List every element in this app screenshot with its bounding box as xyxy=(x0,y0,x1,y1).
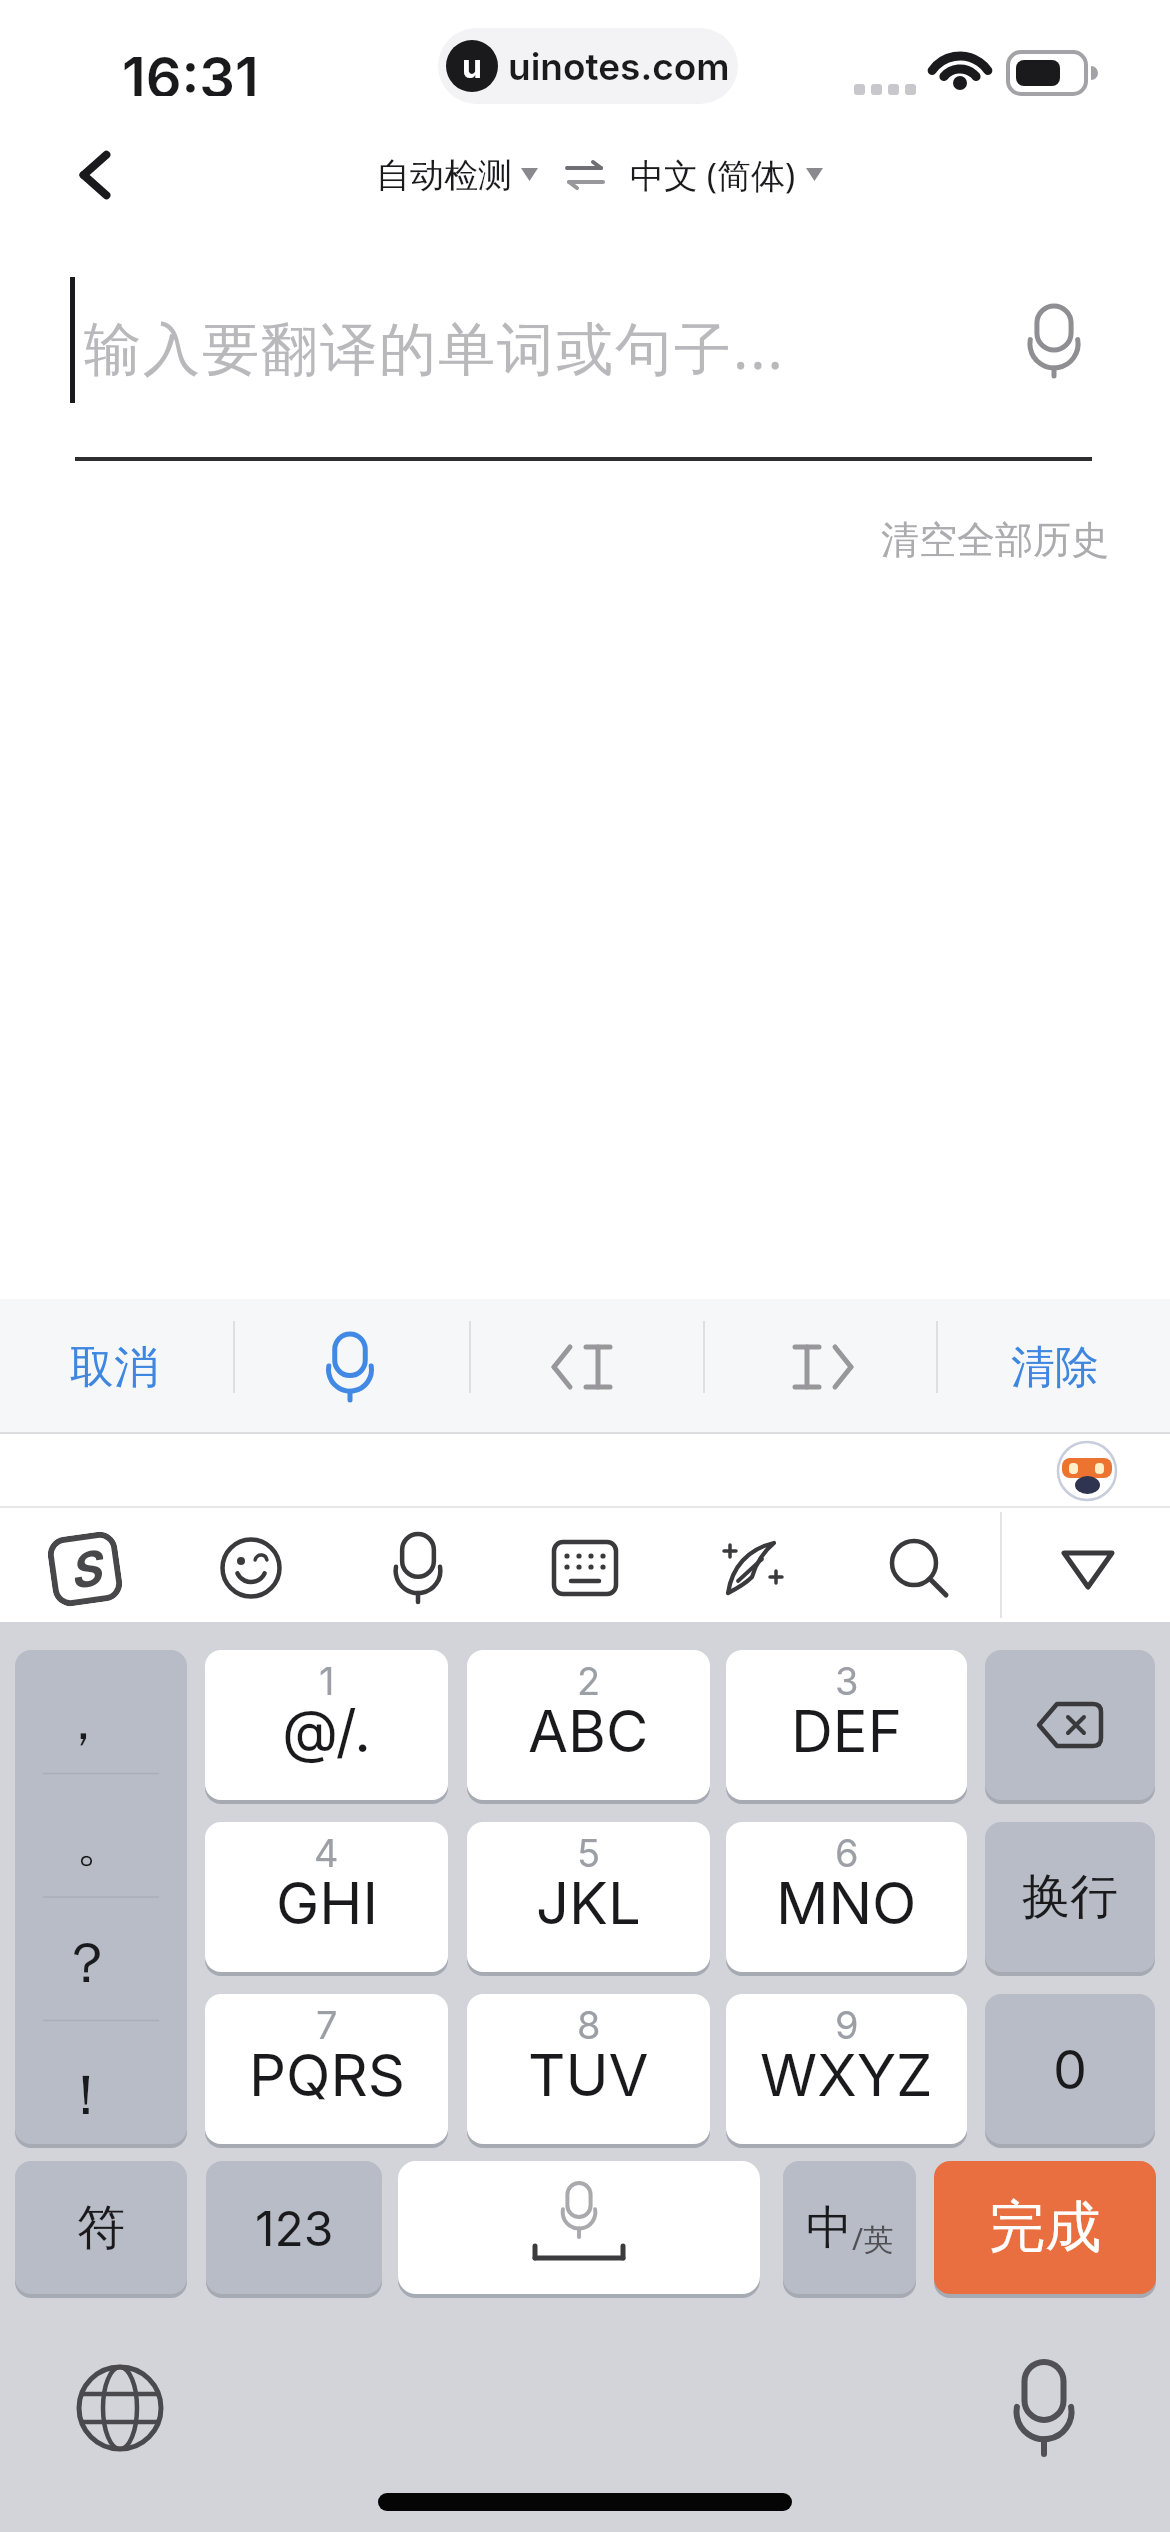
button[interactable]: ， xyxy=(15,1650,187,1773)
button[interactable]: 清空全部历史 xyxy=(880,512,1110,568)
button[interactable]: 中 xyxy=(783,2161,916,2294)
staticText: 6 xyxy=(835,1830,859,1876)
button[interactable]: 符 xyxy=(15,2161,187,2294)
staticText: 中文 (简体) xyxy=(630,152,796,198)
button[interactable] xyxy=(540,1320,630,1414)
button[interactable]: 2 xyxy=(467,1650,710,1800)
button[interactable]: 0 xyxy=(985,1994,1155,2144)
button[interactable]: 。 xyxy=(15,1773,187,1896)
button[interactable]: 9 xyxy=(726,1994,967,2144)
button[interactable]: 清除 xyxy=(985,1320,1125,1414)
staticText: 123 xyxy=(255,2199,334,2257)
staticText: PQRS xyxy=(249,2040,405,2110)
button[interactable]: S xyxy=(45,1529,125,1609)
button[interactable] xyxy=(60,145,130,205)
button[interactable]: 8 xyxy=(467,1994,710,2144)
button[interactable] xyxy=(716,1530,788,1606)
staticText: 1 xyxy=(319,1658,335,1704)
button[interactable] xyxy=(1014,298,1094,384)
button[interactable]: 自动检测 xyxy=(375,145,513,205)
staticText: ！ xyxy=(58,2060,114,2131)
button[interactable]: 3 xyxy=(726,1650,967,1800)
staticText: 完成 xyxy=(989,2192,1101,2263)
button[interactable] xyxy=(775,1320,865,1414)
button[interactable] xyxy=(560,150,610,200)
staticText: S xyxy=(65,1538,105,1600)
button[interactable] xyxy=(884,1532,954,1604)
staticText: TUV xyxy=(528,2040,649,2110)
button[interactable]: 123 xyxy=(206,2161,382,2294)
staticText: JKL xyxy=(536,1868,641,1938)
staticText: 16:31 xyxy=(122,44,259,96)
staticText: 7 xyxy=(316,2002,338,2048)
button[interactable]: 5 xyxy=(467,1822,710,1972)
staticText: ABC xyxy=(528,1696,649,1766)
staticText: 2 xyxy=(577,1658,601,1704)
button[interactable] xyxy=(1050,1540,1126,1600)
button[interactable] xyxy=(996,2356,1092,2460)
button[interactable]: ？ xyxy=(15,1897,187,2020)
staticText: ？ xyxy=(59,1928,115,1999)
staticText: 9 xyxy=(835,2002,859,2048)
button[interactable]: 1 xyxy=(205,1650,448,1800)
button[interactable]: 4 xyxy=(205,1822,448,1972)
staticText: /英 xyxy=(852,2218,894,2259)
staticText: 换行 xyxy=(1022,1867,1118,1927)
button[interactable] xyxy=(215,1532,287,1604)
staticText: ， xyxy=(58,1691,108,1754)
staticText: 清除 xyxy=(1011,1340,1099,1395)
staticText: 输入要翻译的单词或句子... xyxy=(84,308,785,386)
staticText: 3 xyxy=(835,1658,859,1704)
button[interactable]: 换行 xyxy=(985,1822,1155,1972)
staticText: MNO xyxy=(776,1868,917,1938)
staticText: 符 xyxy=(77,2198,125,2258)
staticText: 8 xyxy=(577,2002,601,2048)
staticText: u xyxy=(462,47,482,86)
staticText: 5 xyxy=(577,1830,601,1876)
button[interactable] xyxy=(398,2161,760,2294)
staticText: 取消 xyxy=(70,1340,158,1395)
button[interactable]: 6 xyxy=(726,1822,967,1972)
button[interactable]: 取消 xyxy=(34,1320,194,1414)
staticText: uinotes.com xyxy=(508,44,730,89)
button[interactable] xyxy=(1056,1438,1118,1502)
staticText: 中 xyxy=(806,2199,852,2257)
button[interactable] xyxy=(384,1530,452,1606)
staticText: GHI xyxy=(276,1868,378,1938)
staticText: 0 xyxy=(1053,2037,1088,2102)
button[interactable]: 完成 xyxy=(934,2161,1156,2294)
button[interactable]: ！ xyxy=(15,2020,187,2143)
button[interactable] xyxy=(300,1320,400,1414)
staticText: 自动检测 xyxy=(376,154,512,197)
button[interactable] xyxy=(985,1650,1155,1800)
staticText: 。 xyxy=(76,1813,126,1876)
button[interactable] xyxy=(70,2358,170,2458)
staticText: WXYZ xyxy=(760,2040,933,2110)
button[interactable] xyxy=(550,1536,620,1600)
staticText: 清空全部历史 xyxy=(881,516,1109,564)
staticText: DEF xyxy=(791,1696,902,1766)
button[interactable]: 7 xyxy=(205,1994,448,2144)
staticText: 4 xyxy=(314,1830,339,1876)
button[interactable]: 中文 (简体) xyxy=(620,145,805,205)
staticText: @/. xyxy=(282,1696,372,1766)
button[interactable] xyxy=(15,1650,187,2144)
